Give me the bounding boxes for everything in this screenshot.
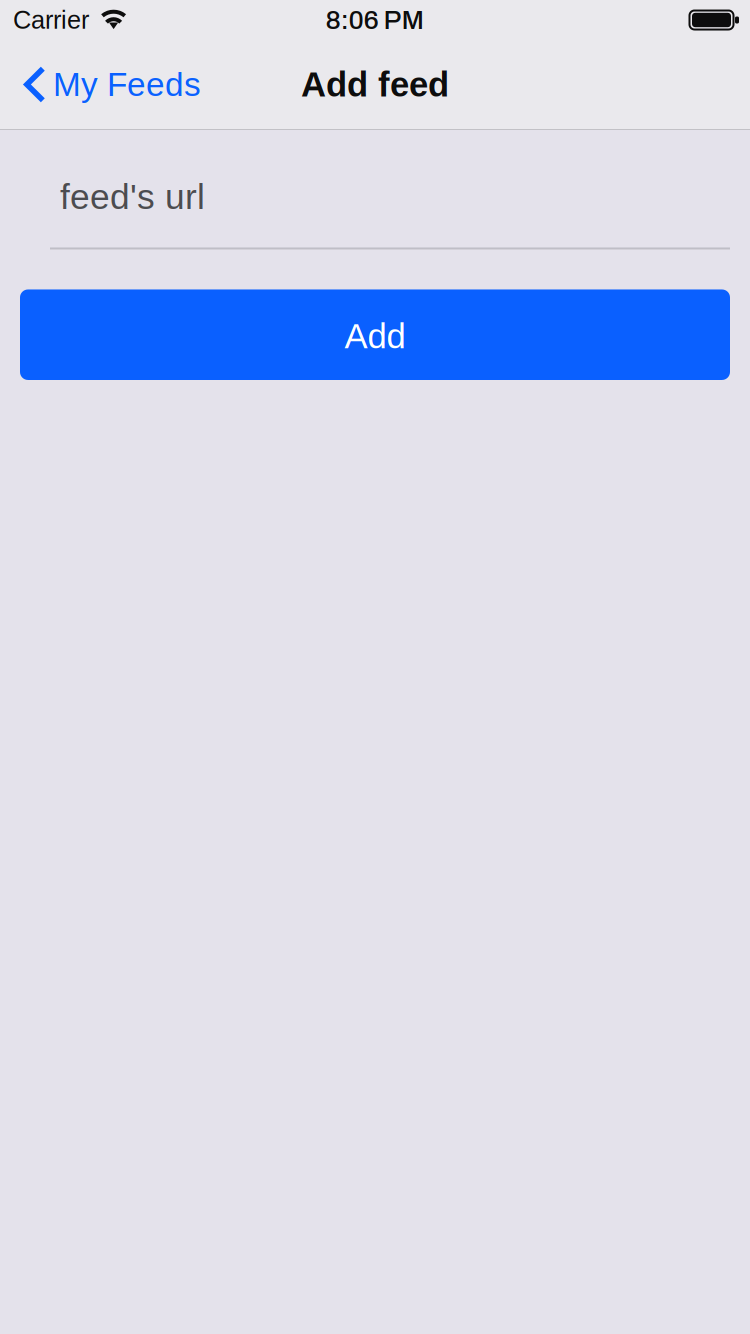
staticText: Carrier bbox=[13, 6, 89, 34]
button[interactable]: My Feeds bbox=[0, 40, 216, 129]
staticText: Add bbox=[344, 317, 405, 355]
staticText: feed's url bbox=[60, 177, 205, 216]
staticText: Add feed bbox=[301, 65, 449, 104]
staticText: 8:06 PM bbox=[325, 5, 424, 34]
button[interactable]: feed's url bbox=[0, 130, 750, 249]
staticText: My Feeds bbox=[53, 66, 201, 103]
button[interactable]: Add bbox=[20, 289, 730, 380]
